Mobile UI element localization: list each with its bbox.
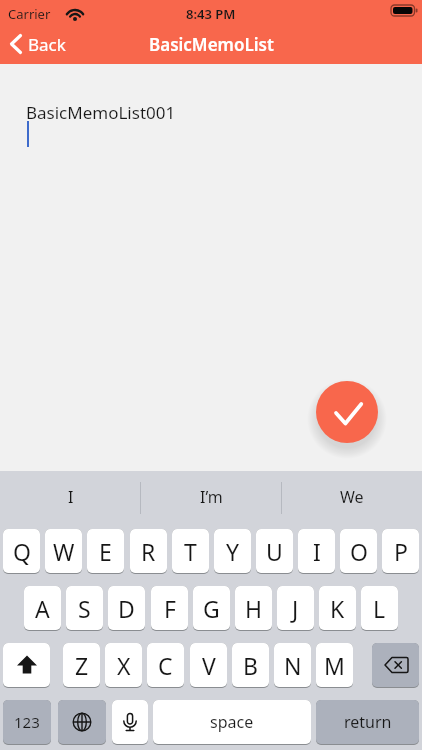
staticText: Q bbox=[13, 536, 31, 567]
button[interactable]: space bbox=[153, 700, 311, 744]
staticText: J bbox=[292, 593, 299, 624]
button[interactable]: B bbox=[232, 643, 269, 687]
staticText: H bbox=[245, 593, 263, 624]
button[interactable]: O bbox=[340, 529, 377, 573]
staticText: D bbox=[118, 593, 135, 624]
button[interactable]: G bbox=[193, 586, 230, 630]
staticText: Carrier bbox=[8, 5, 51, 23]
staticText: K bbox=[330, 593, 345, 624]
button[interactable] bbox=[58, 700, 106, 744]
button[interactable]: N bbox=[274, 643, 311, 687]
staticText: Z bbox=[75, 650, 89, 681]
button[interactable]: V bbox=[190, 643, 227, 687]
button[interactable]: C bbox=[147, 643, 184, 687]
staticText: M bbox=[324, 650, 345, 681]
staticText: I bbox=[68, 486, 74, 508]
button[interactable]: P bbox=[382, 529, 419, 573]
button[interactable]: return bbox=[316, 700, 419, 744]
staticText: 8:43 PM bbox=[186, 5, 236, 23]
staticText: X bbox=[117, 650, 131, 681]
staticText: Y bbox=[226, 536, 240, 567]
button[interactable]: 123 bbox=[3, 700, 51, 744]
staticText: B bbox=[243, 650, 258, 681]
staticText: C bbox=[158, 650, 173, 681]
button[interactable]: U bbox=[256, 529, 293, 573]
button[interactable]: T bbox=[172, 529, 209, 573]
staticText: R bbox=[141, 536, 156, 567]
staticText: N bbox=[284, 650, 302, 681]
staticText: space bbox=[210, 711, 254, 733]
staticText: E bbox=[99, 536, 112, 567]
staticText: G bbox=[203, 593, 220, 624]
button[interactable]: H bbox=[235, 586, 272, 630]
staticText: Back bbox=[28, 33, 66, 56]
button[interactable] bbox=[3, 643, 50, 687]
button[interactable]: W bbox=[45, 529, 82, 573]
button[interactable]: Z bbox=[63, 643, 100, 687]
staticText: BasicMemoList bbox=[149, 33, 274, 56]
button[interactable]: A bbox=[24, 586, 61, 630]
button[interactable] bbox=[372, 643, 419, 687]
button[interactable]: Back bbox=[8, 28, 66, 60]
staticText: T bbox=[184, 536, 197, 567]
button[interactable]: We bbox=[281, 469, 422, 525]
button[interactable]: D bbox=[108, 586, 145, 630]
button[interactable]: Y bbox=[214, 529, 251, 573]
button[interactable] bbox=[112, 700, 148, 744]
staticText: P bbox=[394, 536, 408, 567]
staticText: BasicMemoList001 bbox=[26, 101, 176, 124]
staticText: V bbox=[202, 650, 216, 681]
button[interactable]: I bbox=[0, 469, 141, 525]
staticText: 123 bbox=[14, 712, 40, 732]
button[interactable] bbox=[316, 381, 378, 443]
button[interactable]: K bbox=[319, 586, 356, 630]
staticText: I’m bbox=[200, 486, 223, 508]
staticText: O bbox=[350, 536, 368, 567]
staticText: L bbox=[373, 593, 386, 624]
button[interactable]: Q bbox=[3, 529, 40, 573]
staticText: I bbox=[313, 536, 321, 567]
staticText: S bbox=[78, 593, 91, 624]
button[interactable]: F bbox=[151, 586, 188, 630]
staticText: U bbox=[266, 536, 283, 567]
staticText: A bbox=[35, 593, 50, 624]
button[interactable]: I bbox=[298, 529, 335, 573]
button[interactable]: X bbox=[105, 643, 142, 687]
staticText: F bbox=[164, 593, 176, 624]
button[interactable]: E bbox=[87, 529, 124, 573]
button[interactable]: M bbox=[316, 643, 353, 687]
button[interactable]: S bbox=[66, 586, 103, 630]
staticText: return bbox=[344, 711, 392, 733]
button[interactable]: R bbox=[130, 529, 167, 573]
staticText: We bbox=[340, 486, 364, 508]
button[interactable]: J bbox=[277, 586, 314, 630]
button[interactable]: L bbox=[361, 586, 398, 630]
button[interactable]: I’m bbox=[141, 469, 281, 525]
staticText: W bbox=[53, 536, 75, 567]
